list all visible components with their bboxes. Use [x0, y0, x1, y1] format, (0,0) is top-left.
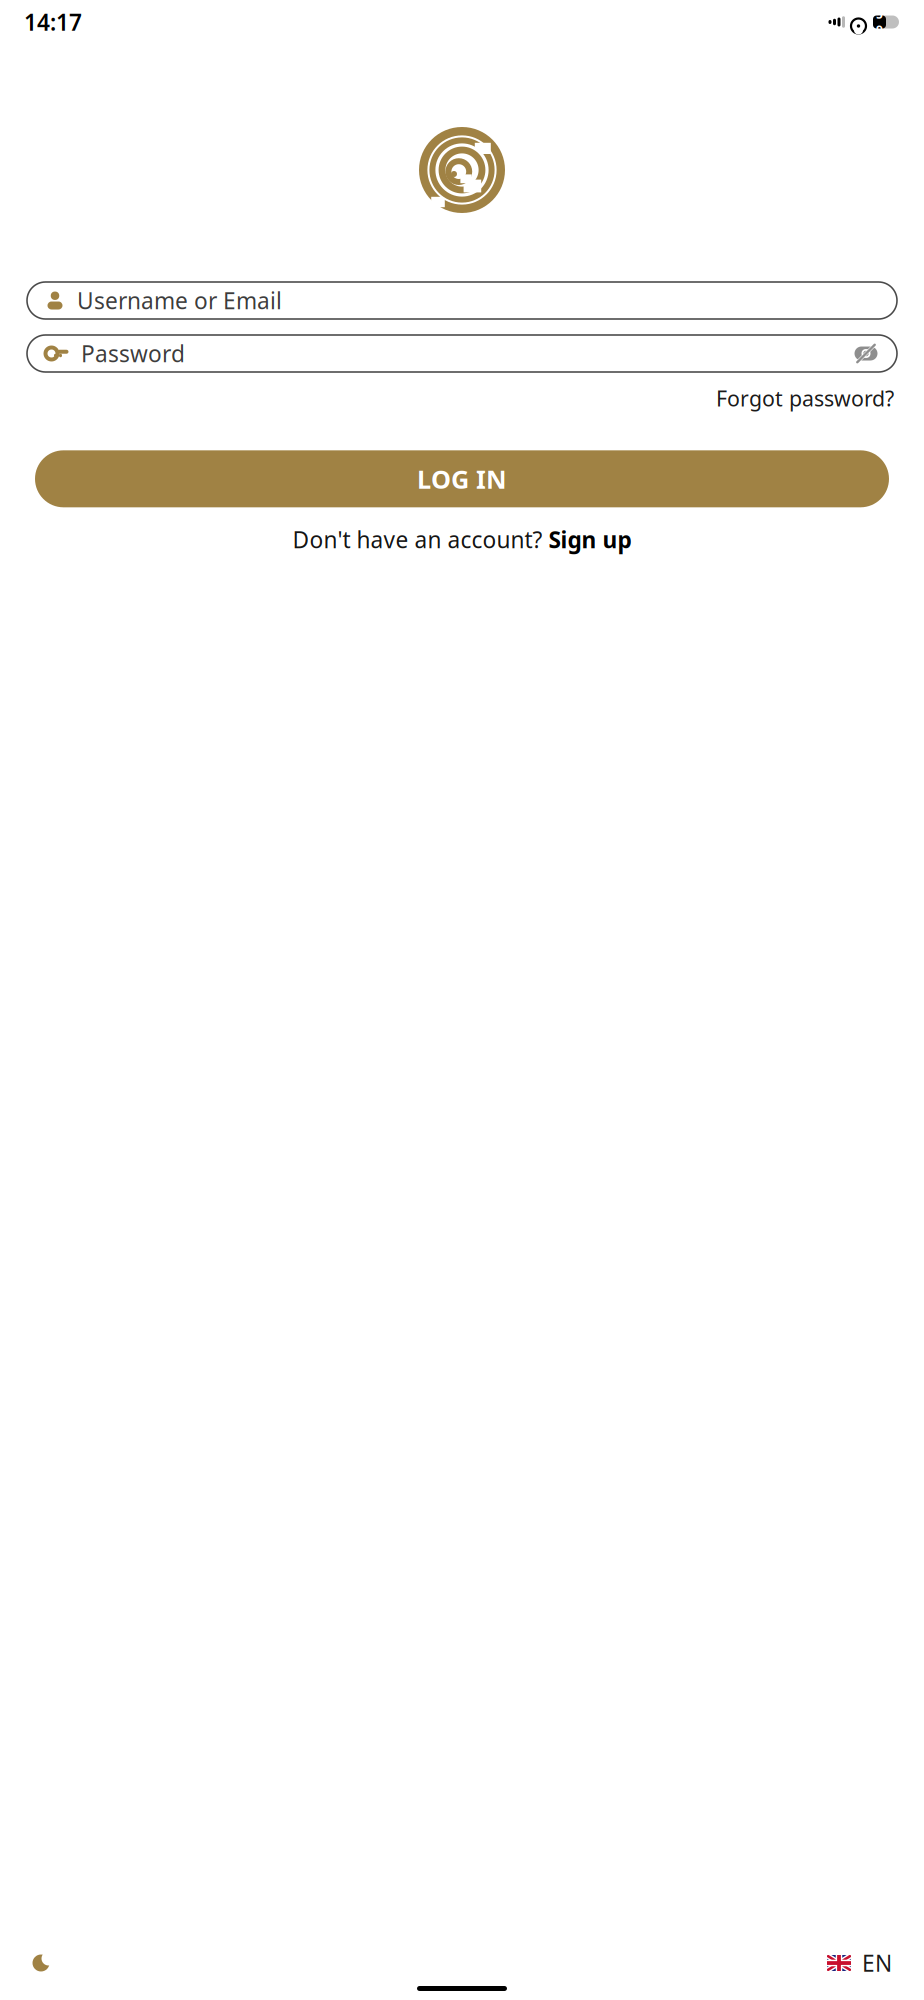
button[interactable]: Dark mode	[32, 1954, 50, 1972]
staticText: EN	[862, 1948, 892, 1978]
staticText: Username or Email	[77, 285, 282, 315]
button[interactable]: EN	[827, 1948, 892, 1978]
staticText: 59	[876, 6, 883, 38]
staticText: Forgot password?	[716, 384, 894, 412]
staticText: 14:17	[24, 7, 82, 37]
button[interactable]: LOG IN	[35, 450, 889, 507]
button[interactable]: Forgot password?	[716, 384, 894, 412]
staticText: LOG IN	[417, 462, 507, 496]
staticText: Sign up	[548, 524, 631, 554]
button[interactable]: Show password	[853, 340, 879, 366]
staticText: Don't have an account?	[292, 524, 548, 554]
button[interactable]: Don't have an account?	[292, 524, 631, 554]
staticText: Password	[81, 338, 185, 368]
